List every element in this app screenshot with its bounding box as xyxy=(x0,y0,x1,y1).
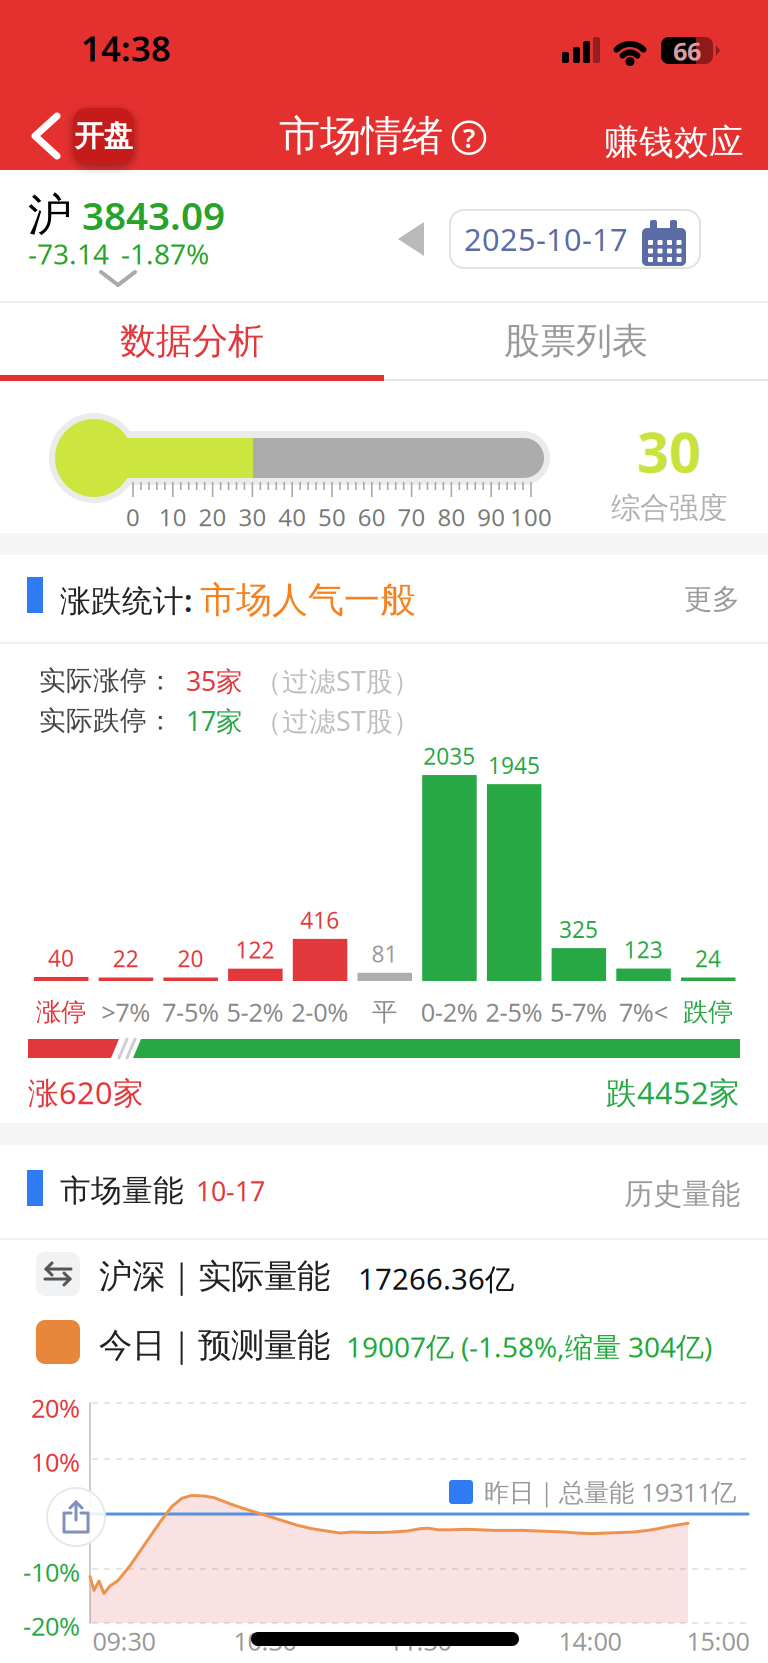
staticText: 30 xyxy=(238,501,266,533)
staticText: -10% xyxy=(23,1555,80,1589)
staticText: 20 xyxy=(199,501,227,533)
staticText: 昨日｜总量能 19311亿 xyxy=(484,1475,736,1509)
staticText: 40 xyxy=(48,943,74,973)
staticText: 实际涨停： xyxy=(39,664,174,697)
staticText: 80 xyxy=(437,501,465,533)
staticText: 50 xyxy=(318,501,346,533)
staticText: 14:38 xyxy=(81,25,171,71)
staticText: 2035 xyxy=(423,741,475,771)
staticText: 5-7% xyxy=(550,995,607,1029)
button[interactable]: 分享 xyxy=(47,1488,105,1546)
staticText: 10:30 xyxy=(233,1624,296,1658)
staticText: 17266.36亿 xyxy=(358,1259,514,1298)
staticText: 100 xyxy=(510,501,552,533)
staticText: 19007亿 (-1.58%,缩量 304亿) xyxy=(346,1328,712,1365)
staticText: 开盘 xyxy=(74,118,132,154)
staticText: -20% xyxy=(23,1609,80,1643)
staticText: 跌停 xyxy=(683,996,733,1027)
staticText: 涨跌统计: xyxy=(60,580,192,620)
staticText: 市场人气一般 xyxy=(200,578,416,622)
staticText: 10-17 xyxy=(196,1173,265,1208)
button[interactable]: 选择日期 xyxy=(450,210,700,268)
staticText: 2-0% xyxy=(291,995,348,1029)
staticText: 20% xyxy=(31,1391,80,1425)
staticText: 15:00 xyxy=(686,1624,749,1658)
staticText: 数据分析 xyxy=(120,319,264,363)
staticText: 24 xyxy=(695,943,721,973)
staticText: 90 xyxy=(477,501,505,533)
staticText: 2-5% xyxy=(485,995,542,1029)
staticText: 赚钱效应 xyxy=(604,121,744,164)
staticText: 30 xyxy=(637,414,701,488)
staticText: 7-5% xyxy=(162,995,219,1029)
staticText: 09:30 xyxy=(92,1624,155,1658)
staticText: 122 xyxy=(236,935,275,965)
staticText: 综合强度 xyxy=(611,490,727,526)
staticText: -73.14 xyxy=(28,235,109,272)
staticText: 实际跌停： xyxy=(39,704,174,737)
button[interactable]: 帮助 xyxy=(453,120,485,155)
staticText: （过滤ST股） xyxy=(255,663,420,698)
staticText: 81 xyxy=(371,939,397,969)
staticText: 11:30 xyxy=(388,1624,451,1658)
staticText: 股票列表 xyxy=(504,319,648,363)
staticText: 更多 xyxy=(684,582,740,616)
button[interactable]: 更多 xyxy=(620,582,740,616)
staticText: 今日｜预测量能 xyxy=(99,1325,330,1366)
staticText: 1945 xyxy=(488,750,540,780)
button[interactable]: 历史量能 xyxy=(580,1176,740,1212)
staticText: 10 xyxy=(159,501,187,533)
staticText: >7% xyxy=(101,995,150,1029)
staticText: （过滤ST股） xyxy=(255,703,420,738)
staticText: 66 xyxy=(673,34,701,68)
button[interactable]: 股票列表 xyxy=(384,304,768,378)
staticText: 17家 xyxy=(186,703,243,738)
staticText: 跌4452家 xyxy=(606,1072,740,1113)
staticText: 10% xyxy=(31,1445,80,1479)
staticText: 0-2% xyxy=(421,995,478,1029)
staticText: 35家 xyxy=(186,663,243,698)
staticText: 沪 xyxy=(28,188,72,242)
staticText: 123 xyxy=(624,934,663,965)
staticText: 40 xyxy=(278,501,306,533)
staticText: 涨620家 xyxy=(28,1072,144,1113)
staticText: 325 xyxy=(559,914,598,944)
staticText: 7%< xyxy=(619,995,668,1029)
staticText: 416 xyxy=(300,905,339,935)
staticText: ? xyxy=(463,120,475,155)
staticText: -1.87% xyxy=(121,235,209,272)
staticText: 60 xyxy=(358,501,386,533)
staticText: 涨停 xyxy=(36,996,86,1027)
staticText: 市场情绪 xyxy=(279,111,443,161)
staticText: 3843.09 xyxy=(82,189,225,241)
staticText: 22 xyxy=(113,943,139,973)
staticText: 20 xyxy=(177,943,203,973)
staticText: 70 xyxy=(398,501,426,533)
staticText: 14:00 xyxy=(558,1624,621,1658)
button[interactable]: 数据分析 xyxy=(0,304,384,378)
button[interactable]: 返回 xyxy=(31,108,134,164)
staticText: 5-2% xyxy=(227,995,284,1029)
staticText: 2025-10-17 xyxy=(464,219,628,259)
staticText: 市场量能 xyxy=(60,1172,184,1210)
staticText: 沪深｜实际量能 xyxy=(99,1256,330,1297)
button[interactable]: 赚钱效应 xyxy=(604,121,744,164)
staticText: 0 xyxy=(126,501,140,533)
staticText: 历史量能 xyxy=(624,1176,740,1212)
staticText: 平 xyxy=(372,996,397,1027)
